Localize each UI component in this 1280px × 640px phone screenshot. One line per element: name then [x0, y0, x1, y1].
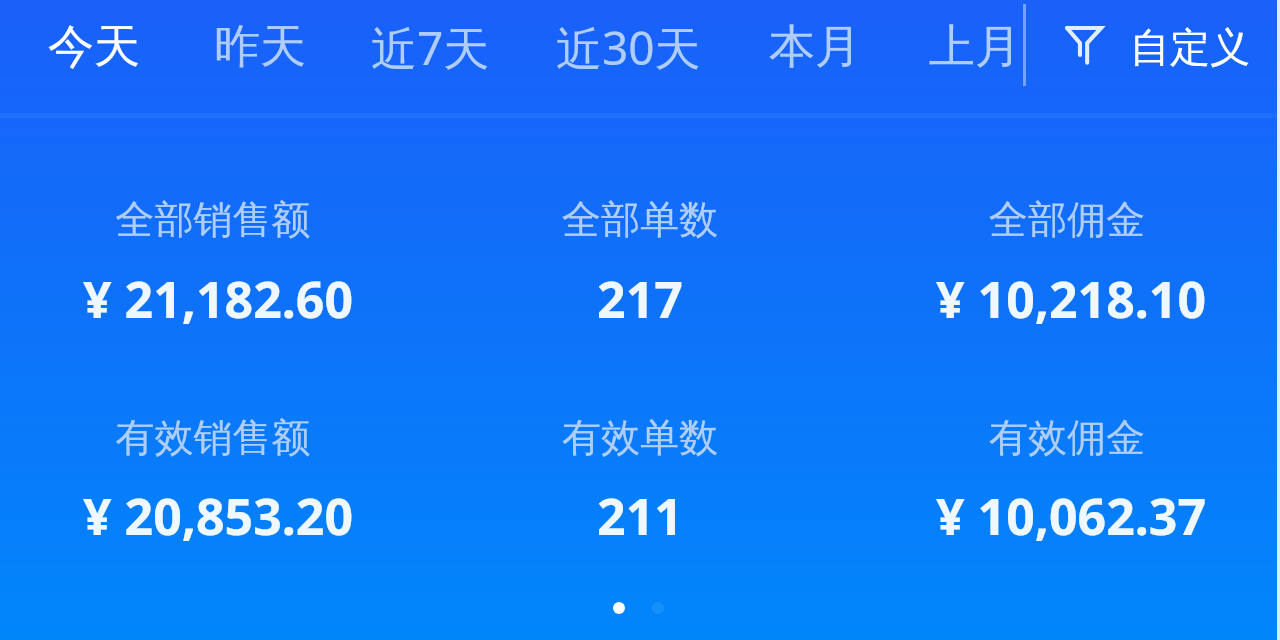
button[interactable]: 昨天 [214, 0, 306, 94]
staticText: 昨天 [214, 18, 306, 76]
button[interactable]: 本月 [769, 0, 861, 94]
staticText: 有效佣金 [857, 413, 1277, 462]
staticText: 全部单数 [430, 195, 850, 244]
staticText: 全部佣金 [857, 195, 1277, 244]
button[interactable]: 近30天 [556, 0, 701, 94]
staticText: 近30天 [556, 16, 701, 79]
button[interactable] [3, 169, 423, 335]
staticText: 有效销售额 [3, 413, 423, 462]
staticText: ¥ 21,182.60 [8, 265, 428, 333]
staticText: 217 [430, 265, 850, 333]
staticText: ¥ 10,062.37 [861, 482, 1280, 550]
button[interactable]: 上月 [929, 0, 1021, 94]
other: 筛选 Filter [1061, 21, 1109, 69]
staticText: 上月 [929, 18, 1021, 76]
staticText: ¥ 10,218.10 [861, 265, 1280, 333]
button[interactable] [857, 387, 1277, 552]
button[interactable] [857, 169, 1277, 335]
button[interactable]: 筛选 Filter [1061, 0, 1250, 94]
staticText: 近7天 [371, 16, 490, 79]
staticText: 211 [430, 482, 850, 550]
staticText: ¥ 20,853.20 [8, 482, 428, 550]
button[interactable]: 今天 [48, 0, 140, 94]
staticText: 有效单数 [430, 413, 850, 462]
button[interactable] [430, 387, 850, 552]
button[interactable] [430, 169, 850, 335]
staticText: 今天 [48, 18, 140, 76]
staticText: 自定义 [1130, 22, 1250, 72]
button[interactable]: 近7天 [371, 0, 490, 94]
staticText: 全部销售额 [3, 195, 423, 244]
button[interactable]: Page 1 of 2 [595, 586, 685, 630]
button[interactable] [3, 387, 423, 552]
staticText: 本月 [769, 18, 861, 76]
